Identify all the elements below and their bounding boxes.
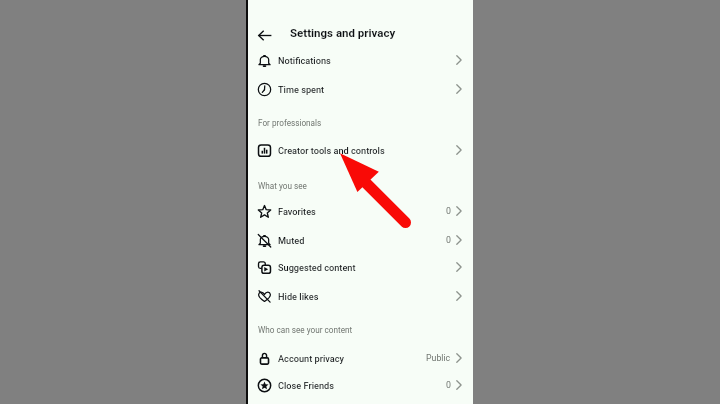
staticText: Hide likes	[278, 291, 319, 302]
staticText: Public	[426, 353, 451, 363]
staticText: Suggested content	[278, 262, 356, 273]
button[interactable]: Close Friends	[248, 371, 473, 399]
staticText: Notifications	[278, 55, 331, 66]
button[interactable]: Hide likes	[248, 282, 473, 310]
staticText: 0	[446, 206, 451, 216]
staticText: Time spent	[278, 84, 325, 95]
button[interactable]: Notifications	[248, 46, 473, 74]
staticText: 0	[446, 380, 451, 390]
button[interactable]: Suggested content	[248, 253, 473, 281]
staticText: For professionals	[258, 118, 322, 128]
button[interactable]: Muted	[248, 226, 473, 254]
button[interactable]: Time spent	[248, 75, 473, 103]
staticText: Favorites	[278, 206, 316, 217]
button[interactable]: Favorites	[248, 197, 473, 225]
staticText: Who can see your content	[258, 325, 353, 335]
staticText: Settings and privacy	[290, 26, 396, 39]
button[interactable]: Account privacy	[248, 344, 473, 372]
staticText: What you see	[258, 181, 307, 191]
staticText: Muted	[278, 235, 305, 246]
button[interactable]: Back	[252, 23, 278, 47]
button[interactable]: Creator tools and controls	[248, 136, 473, 164]
staticText: Creator tools and controls	[278, 145, 385, 156]
staticText: Account privacy	[278, 353, 345, 364]
staticText: Close Friends	[278, 380, 335, 391]
staticText: 0	[446, 235, 451, 245]
